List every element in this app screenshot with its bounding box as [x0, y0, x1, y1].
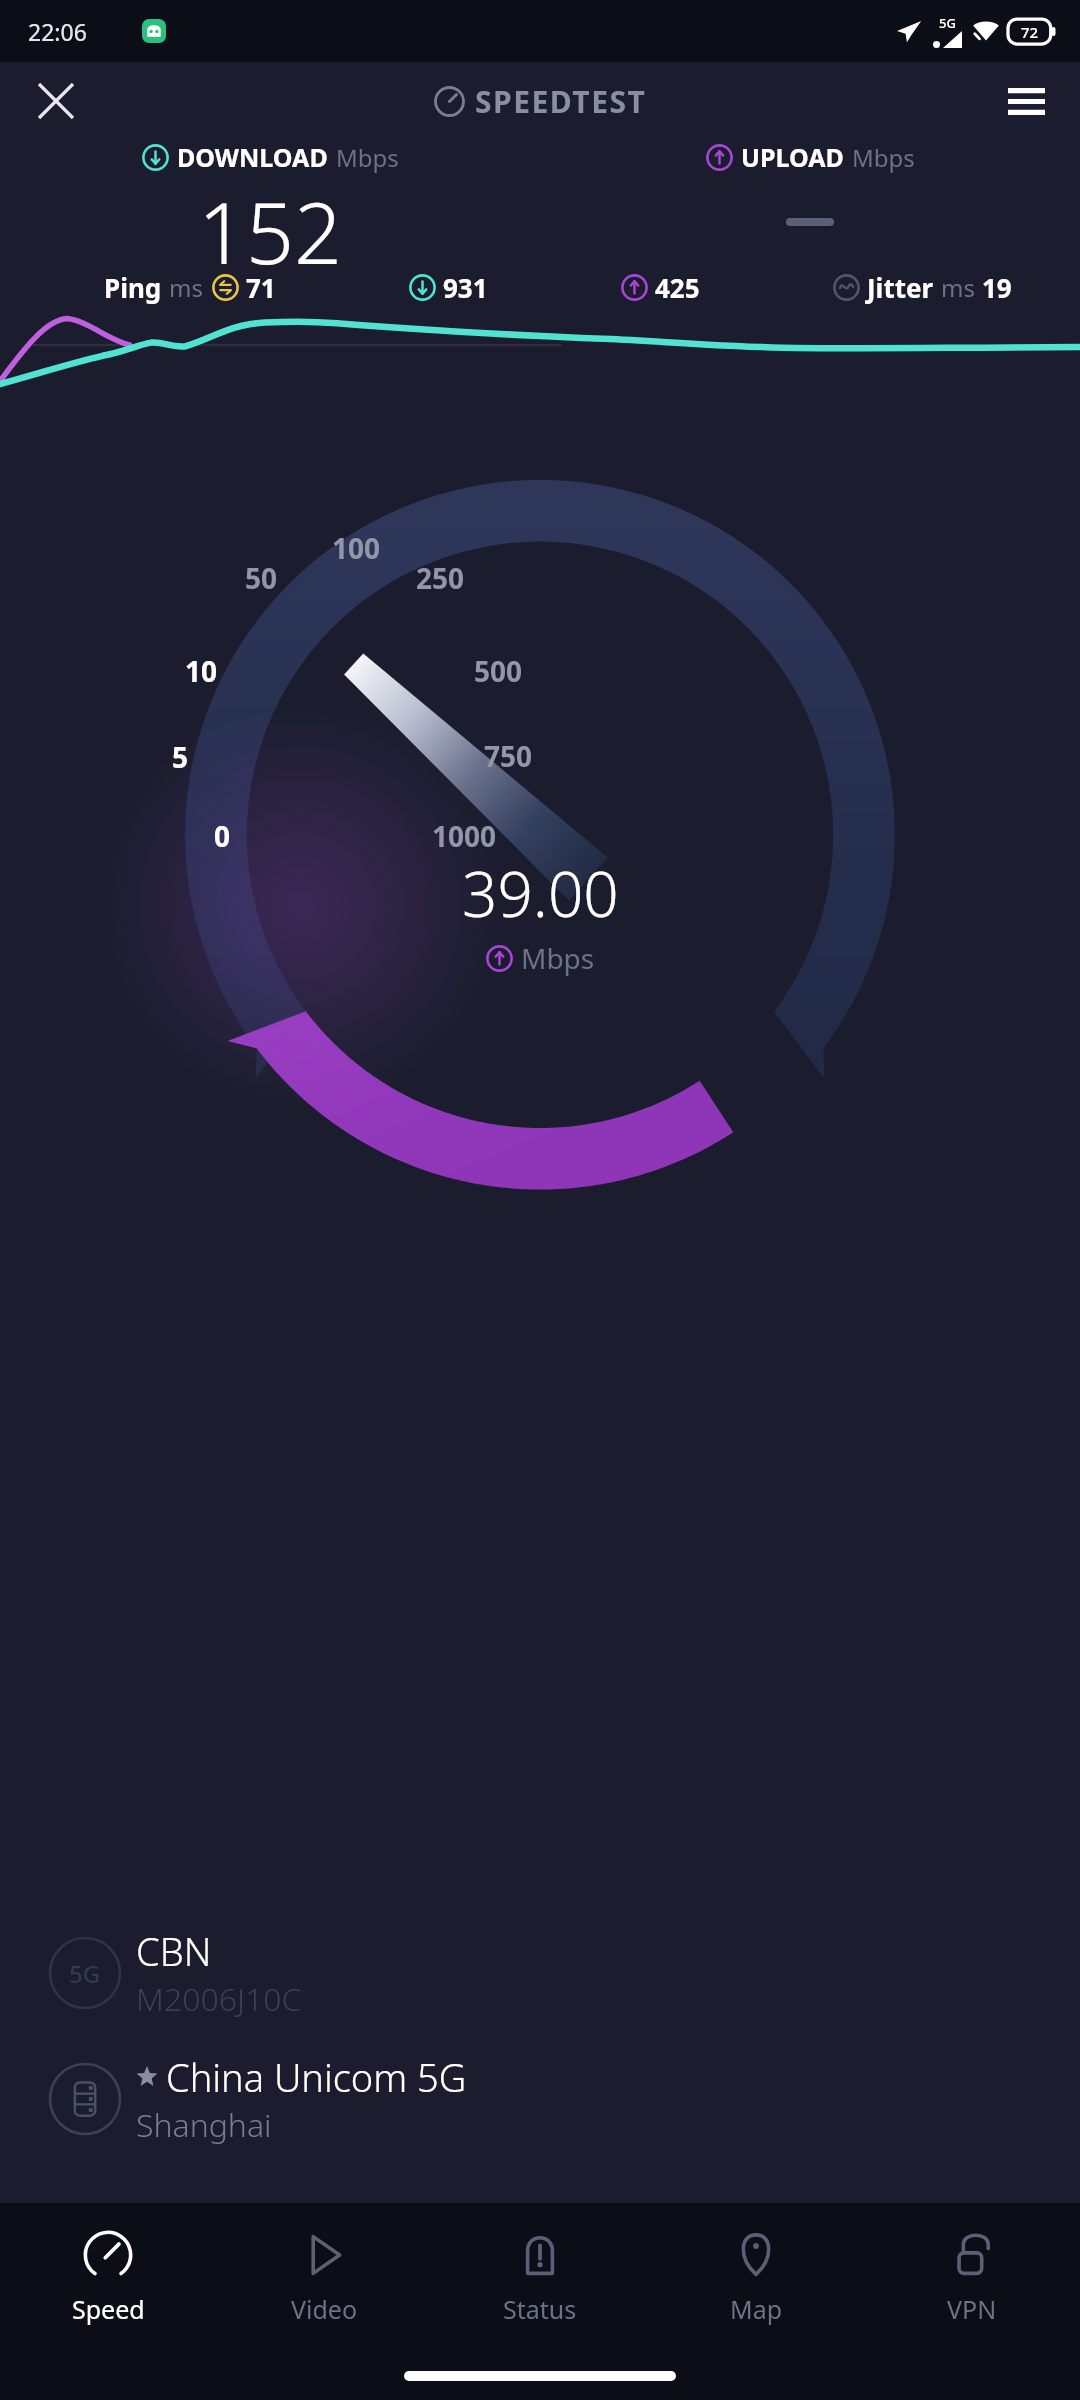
staticText: 152: [198, 174, 342, 270]
staticText: CBN: [136, 1925, 212, 1977]
staticText: 50: [245, 559, 278, 597]
staticText: ms: [169, 271, 203, 304]
button[interactable]: Close: [26, 71, 86, 131]
staticText: DOWNLOAD: [177, 140, 328, 174]
staticText: 750: [484, 737, 533, 775]
staticText: Shanghai: [136, 2103, 272, 2147]
staticText: 1000: [432, 817, 497, 855]
staticText: 5G: [939, 14, 956, 32]
button[interactable]: Status: [432, 2203, 648, 2351]
button[interactable]: Map: [648, 2203, 864, 2351]
staticText: Map: [730, 2292, 783, 2326]
staticText: Mbps: [336, 141, 399, 174]
staticText: 72: [1021, 22, 1039, 42]
staticText: SPEEDTEST: [475, 81, 647, 122]
staticText: 71: [246, 270, 276, 305]
staticText: 39.00: [462, 851, 619, 935]
staticText: VPN: [947, 2292, 997, 2326]
staticText: China Unicom 5G: [166, 2051, 467, 2103]
staticText: 425: [655, 270, 700, 305]
button[interactable]: VPN: [864, 2203, 1080, 2351]
button[interactable]: Video: [216, 2203, 432, 2351]
staticText: 500: [474, 652, 523, 690]
staticText: 5: [172, 738, 189, 776]
staticText: Ping: [104, 270, 162, 305]
staticText: 5G: [69, 1957, 101, 1990]
staticText: Video: [291, 2292, 358, 2326]
staticText: 100: [332, 529, 381, 567]
staticText: Speed: [72, 2292, 145, 2326]
button[interactable]: Menu: [996, 71, 1056, 131]
staticText: M2006J10C: [136, 1977, 302, 2021]
staticText: 250: [416, 559, 465, 597]
staticText: ms: [941, 271, 975, 304]
staticText: Jitter: [867, 270, 934, 305]
staticText: 10: [185, 652, 218, 690]
staticText: UPLOAD: [741, 140, 844, 174]
button[interactable]: Speed: [0, 2203, 216, 2351]
staticText: Mbps: [521, 939, 595, 977]
staticText: Status: [503, 2292, 577, 2326]
staticText: 19: [982, 270, 1012, 305]
staticText: 0: [214, 817, 231, 855]
button[interactable]: 5G: [48, 1925, 1080, 2021]
button[interactable]: China Unicom 5G: [48, 2051, 1080, 2147]
staticText: 931: [443, 270, 488, 305]
staticText: Mbps: [852, 141, 915, 174]
staticText: 22:06: [28, 16, 87, 47]
